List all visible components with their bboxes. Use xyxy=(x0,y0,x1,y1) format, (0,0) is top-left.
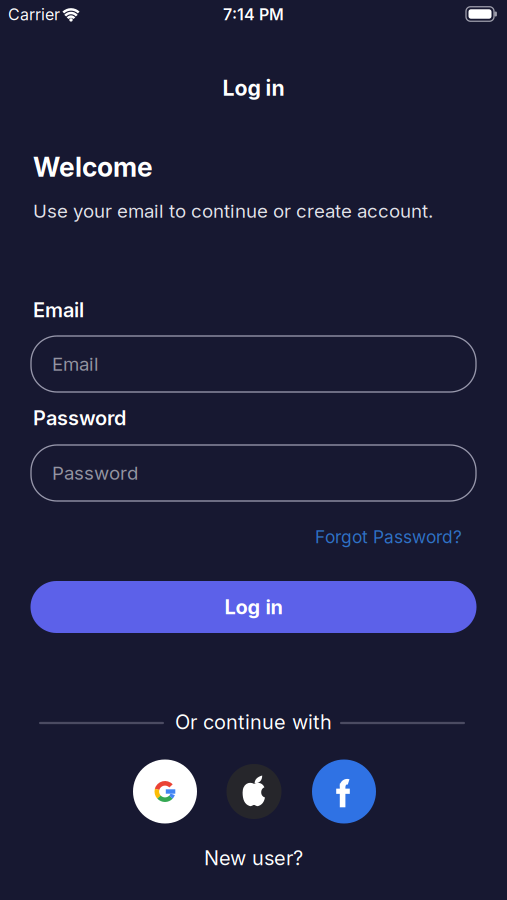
staticText: Password xyxy=(52,462,138,484)
button[interactable]: Log in xyxy=(30,581,476,633)
staticText: 7:14 PM xyxy=(223,5,284,24)
button[interactable]: Email xyxy=(31,336,476,392)
button[interactable] xyxy=(133,759,197,823)
button[interactable]: Forgot Password? xyxy=(315,527,462,547)
button[interactable] xyxy=(226,764,281,819)
staticText: New user? xyxy=(204,846,303,870)
button[interactable]: New user? xyxy=(204,846,303,870)
staticText: Email xyxy=(52,353,99,375)
staticText: Use your email to continue or create acc… xyxy=(33,200,433,222)
staticText: Welcome xyxy=(33,151,153,183)
staticText: Carrier xyxy=(8,5,60,24)
button[interactable]: Password xyxy=(31,445,476,501)
staticText: Email xyxy=(33,298,84,322)
staticText: Log in xyxy=(222,75,284,101)
staticText: Forgot Password? xyxy=(315,527,462,547)
staticText: Or continue with xyxy=(175,710,332,734)
staticText: Log in xyxy=(224,595,282,619)
staticText: Password xyxy=(33,406,126,430)
button[interactable] xyxy=(312,759,376,823)
